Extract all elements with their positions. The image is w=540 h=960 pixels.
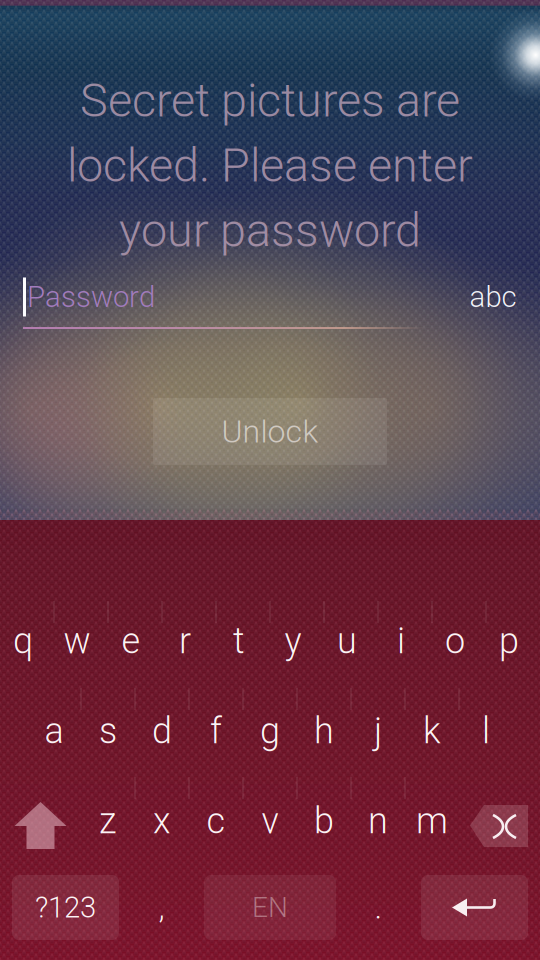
staticText: o <box>445 620 465 662</box>
staticText: EN <box>252 891 288 924</box>
staticText: Password <box>27 280 155 314</box>
button[interactable]: a <box>27 686 81 776</box>
staticText: ?123 <box>35 890 96 925</box>
button[interactable]: g <box>243 686 297 776</box>
button[interactable]: abc <box>454 275 532 319</box>
staticText: . <box>374 889 382 926</box>
staticText: d <box>152 710 172 752</box>
staticText: x <box>153 800 171 842</box>
staticText: , <box>158 889 164 926</box>
staticText: f <box>210 710 222 752</box>
button[interactable]: c <box>189 776 243 866</box>
staticText: v <box>261 800 278 842</box>
button[interactable]: t <box>212 596 266 686</box>
staticText: Unlock <box>221 413 318 450</box>
staticText: b <box>314 800 334 842</box>
staticText: a <box>44 710 63 752</box>
staticText: l <box>482 710 490 752</box>
staticText: p <box>499 620 519 662</box>
button[interactable]: w <box>50 596 104 686</box>
button[interactable]: x <box>135 776 189 866</box>
staticText: t <box>233 620 245 662</box>
staticText: k <box>423 710 441 752</box>
button[interactable]: r <box>158 596 212 686</box>
staticText: z <box>99 800 117 842</box>
staticText: i <box>397 620 405 662</box>
staticText: q <box>13 620 33 662</box>
button[interactable]: q <box>0 596 50 686</box>
staticText: h <box>314 710 334 752</box>
staticText: u <box>337 620 357 662</box>
button[interactable]: i <box>374 596 428 686</box>
button[interactable]: EN <box>204 875 336 940</box>
button[interactable]: b <box>297 776 351 866</box>
button[interactable]: u <box>320 596 374 686</box>
staticText: e <box>121 620 140 662</box>
staticText: w <box>63 620 90 662</box>
staticText: m <box>416 800 448 842</box>
button[interactable]: . <box>336 875 421 940</box>
staticText: g <box>260 710 280 752</box>
staticText: c <box>206 800 225 842</box>
button[interactable]: l <box>459 686 513 776</box>
button[interactable]: y <box>266 596 320 686</box>
staticText: abc <box>469 280 516 314</box>
button[interactable]: ?123 <box>12 875 119 940</box>
staticText: locked. Please enter <box>67 138 473 193</box>
button[interactable]: j <box>351 686 405 776</box>
button[interactable]: h <box>297 686 351 776</box>
button[interactable]: Return <box>421 875 528 940</box>
button[interactable]: p <box>482 596 536 686</box>
staticText: n <box>368 800 388 842</box>
staticText: y <box>284 620 301 662</box>
button[interactable]: Unlock <box>153 398 387 465</box>
button[interactable]: k <box>405 686 459 776</box>
staticText: your password <box>119 203 421 258</box>
button[interactable]: o <box>428 596 482 686</box>
staticText: r <box>179 620 191 662</box>
staticText: Secret pictures are <box>80 73 460 128</box>
button[interactable]: d <box>135 686 189 776</box>
button[interactable]: Shift <box>0 776 81 866</box>
staticText: s <box>99 710 117 752</box>
button[interactable]: m <box>405 776 459 866</box>
button[interactable]: e <box>104 596 158 686</box>
button[interactable]: s <box>81 686 135 776</box>
button[interactable]: , <box>119 875 204 940</box>
button[interactable]: Backspace <box>459 776 540 866</box>
button[interactable]: n <box>351 776 405 866</box>
staticText: j <box>374 710 382 752</box>
button[interactable]: v <box>243 776 297 866</box>
button[interactable]: f <box>189 686 243 776</box>
button[interactable]: z <box>81 776 135 866</box>
